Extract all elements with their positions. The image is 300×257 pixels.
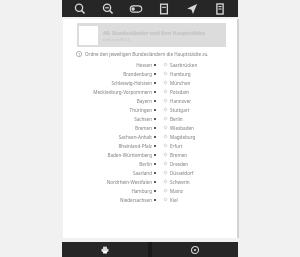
button[interactable]: Nordrhein-Westfalen xyxy=(63,177,238,186)
staticText: Mecklenburg-Vorpommern xyxy=(93,89,152,95)
button[interactable]: Sachsen xyxy=(63,114,238,123)
staticText: Baden-Württemberg xyxy=(107,152,152,158)
staticText: Nordrhein-Westfalen xyxy=(106,179,152,185)
staticText: Wiesbaden xyxy=(170,125,194,131)
button[interactable]: Zoom out xyxy=(70,0,90,17)
staticText: Dresden xyxy=(170,161,189,167)
staticText: Ordne den jeweiligen Bundesländern die H… xyxy=(85,51,209,57)
button[interactable]: Fit page width xyxy=(126,0,146,17)
staticText: Erdkunde/M 5.4 xyxy=(103,37,130,42)
staticText: München xyxy=(170,80,191,86)
staticText: Hamburg xyxy=(170,71,191,77)
button[interactable]: Niedersachsen xyxy=(63,195,238,204)
button[interactable]: Schleswig-Holstein xyxy=(63,78,238,87)
staticText: Thüringen xyxy=(129,107,152,113)
button[interactable]: Rheinland-Pfalz xyxy=(63,141,238,150)
button[interactable]: Berlin xyxy=(63,159,238,168)
staticText: Magdeburg xyxy=(170,134,196,140)
staticText: Erfurt xyxy=(170,143,183,149)
staticText: Rheinland-Pfalz xyxy=(118,143,152,149)
button[interactable]: Baden-Württemberg xyxy=(63,150,238,159)
staticText: Mainz xyxy=(170,188,183,194)
staticText: Berlin xyxy=(139,161,152,167)
staticText: Berlin xyxy=(170,116,183,122)
staticText: 1 xyxy=(78,52,81,57)
staticText: Hessen xyxy=(136,62,152,68)
button[interactable]: Thüringen xyxy=(63,105,238,114)
staticText: Niedersachsen xyxy=(119,197,152,203)
staticText: Stuttgart xyxy=(170,107,190,113)
button[interactable]: Select tool xyxy=(182,0,202,17)
button[interactable]: Sachsen-Anhalt xyxy=(63,132,238,141)
button[interactable]: Settings xyxy=(152,242,238,257)
button[interactable]: Bayern xyxy=(63,96,238,105)
staticText: Sachsen-Anhalt xyxy=(118,134,152,140)
button[interactable]: Brandenburg xyxy=(63,69,238,78)
staticText: Saarbrücken xyxy=(170,62,198,68)
button[interactable]: Bremen xyxy=(63,123,238,132)
staticText: Schwerin xyxy=(170,179,190,185)
button[interactable]: Document view xyxy=(154,0,174,17)
button[interactable]: Hamburg xyxy=(63,186,238,195)
staticText: Sachsen xyxy=(134,116,152,122)
button[interactable]: Hessen xyxy=(63,60,238,69)
staticText: Bremen xyxy=(170,152,188,158)
staticText: Hannover xyxy=(170,98,192,104)
staticText: Kiel xyxy=(170,197,178,203)
staticText: Bayern xyxy=(136,98,152,104)
button[interactable]: Mecklenburg-Vorpommern xyxy=(63,87,238,96)
staticText: Düsseldorf xyxy=(170,170,194,176)
staticText: Potsdam xyxy=(170,89,190,95)
staticText: Hamburg xyxy=(131,188,152,194)
staticText: Bremen xyxy=(134,125,152,131)
staticText: A8. Bundesländer und ihre Hauptstädte xyxy=(103,29,206,36)
button[interactable]: Save document xyxy=(62,242,148,257)
staticText: Saarland xyxy=(132,170,152,176)
button[interactable]: Notes xyxy=(210,0,230,17)
staticText: Brandenburg xyxy=(123,71,152,77)
button[interactable]: Zoom in xyxy=(98,0,118,17)
button[interactable]: 1 xyxy=(76,51,238,57)
button[interactable]: Saarland xyxy=(63,168,238,177)
button[interactable]: A8. Bundesländer und ihre Hauptstädte xyxy=(77,23,226,47)
staticText: Schleswig-Holstein xyxy=(111,80,152,86)
